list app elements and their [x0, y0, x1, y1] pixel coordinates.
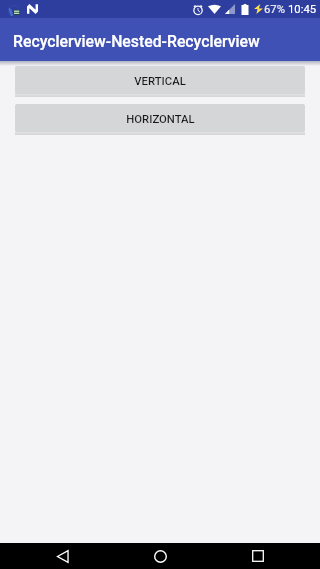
button[interactable]: VERTICAL: [15, 66, 305, 94]
staticText: 10:45: [288, 3, 317, 16]
staticText: 67%: [264, 3, 285, 16]
button[interactable]: Recent apps: [245, 543, 271, 569]
button[interactable]: Back: [50, 543, 76, 569]
staticText: HORIZONTAL: [126, 113, 195, 126]
staticText: Recyclerview-Nested-Recyclerview: [13, 32, 260, 51]
staticText: VERTICAL: [134, 75, 186, 88]
button[interactable]: Home: [147, 543, 173, 569]
button[interactable]: HORIZONTAL: [15, 104, 305, 132]
